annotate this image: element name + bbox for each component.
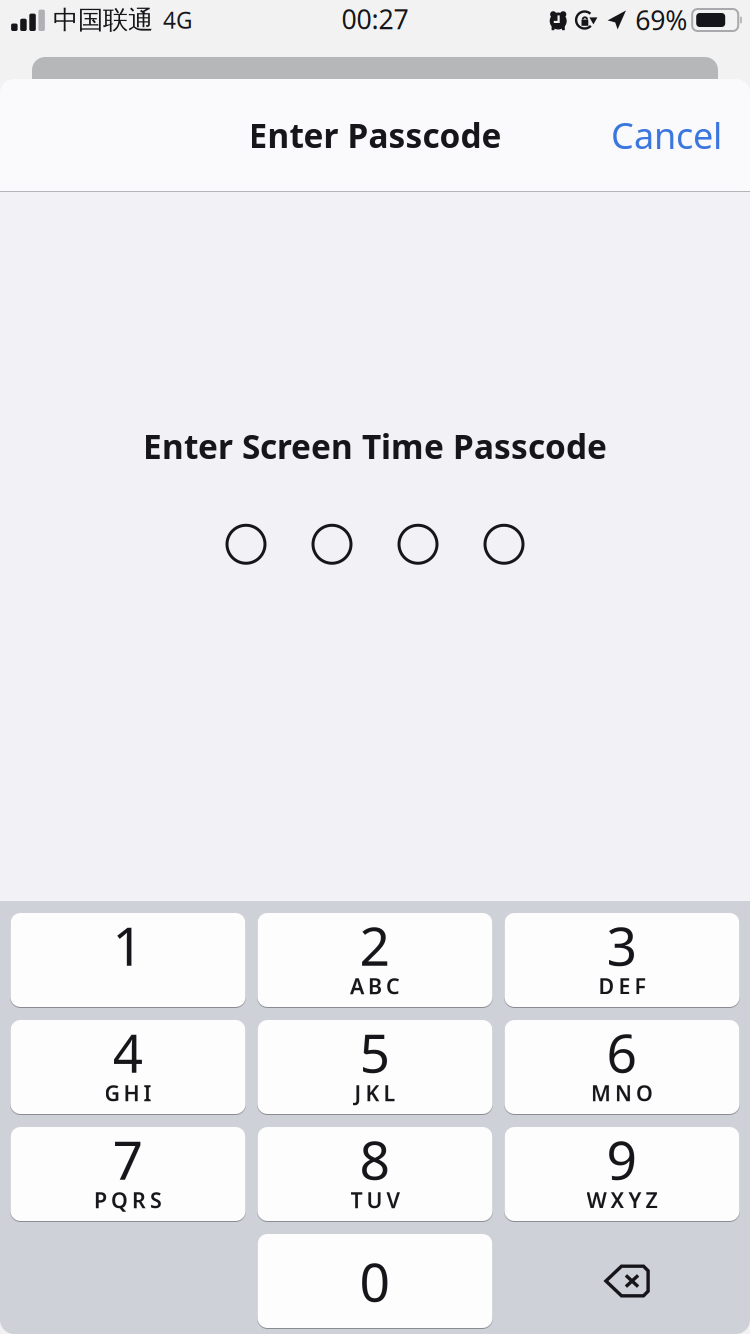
- staticText: 4G: [163, 5, 193, 35]
- staticText: 1: [112, 910, 143, 980]
- staticText: 中国联通: [53, 4, 153, 35]
- staticText: P Q R S: [94, 1186, 162, 1214]
- staticText: 8: [359, 1124, 390, 1194]
- button[interactable]: 9: [504, 1127, 739, 1221]
- staticText: 7: [112, 1124, 143, 1194]
- staticText: 4: [112, 1017, 143, 1087]
- staticText: J K L: [354, 1079, 395, 1107]
- staticText: 69%: [635, 2, 687, 38]
- button[interactable]: 2: [257, 913, 492, 1007]
- button[interactable]: 1: [10, 913, 245, 1007]
- button[interactable]: 5: [257, 1020, 492, 1114]
- button[interactable]: Delete: [504, 1234, 739, 1328]
- button[interactable]: 8: [257, 1127, 492, 1221]
- staticText: M N O: [591, 1079, 653, 1107]
- staticText: A B C: [350, 972, 400, 1000]
- staticText: Enter Screen Time Passcode: [143, 424, 607, 468]
- staticText: D E F: [598, 972, 645, 1000]
- button[interactable]: 6: [504, 1020, 739, 1114]
- staticText: 00:27: [341, 1, 408, 37]
- button[interactable]: 3: [504, 913, 739, 1007]
- staticText: T U V: [350, 1186, 399, 1214]
- button[interactable]: 0: [257, 1234, 492, 1328]
- staticText: 6: [606, 1017, 637, 1087]
- staticText: W X Y Z: [586, 1186, 657, 1214]
- staticText: 9: [606, 1124, 637, 1194]
- staticText: 5: [359, 1017, 390, 1087]
- staticText: Cancel: [611, 111, 722, 159]
- button[interactable]: 7: [10, 1127, 245, 1221]
- staticText: 0: [359, 1246, 390, 1316]
- staticText: 3: [606, 910, 637, 980]
- staticText: G H I: [104, 1079, 151, 1107]
- staticText: 2: [359, 910, 390, 980]
- staticText: Enter Passcode: [248, 113, 501, 157]
- button[interactable]: Cancel: [601, 97, 732, 173]
- button[interactable]: 4: [10, 1020, 245, 1114]
